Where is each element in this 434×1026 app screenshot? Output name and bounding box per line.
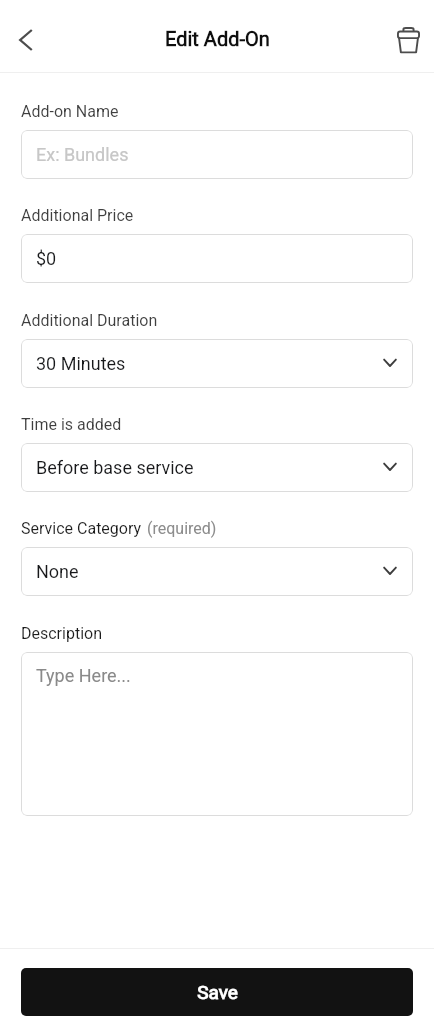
button[interactable]: Save xyxy=(21,968,413,1016)
staticText: Description xyxy=(21,624,102,643)
staticText: Additional Duration xyxy=(21,311,158,330)
staticText: None xyxy=(36,561,381,582)
staticText: $0 xyxy=(36,248,57,269)
staticText: Additional Price xyxy=(21,206,134,225)
staticText: Save xyxy=(197,981,238,1003)
staticText: Service Category xyxy=(21,519,142,538)
button[interactable]: $0 xyxy=(21,234,413,283)
staticText: Ex: Bundles xyxy=(36,144,129,165)
staticText: 30 Minutes xyxy=(36,353,381,374)
staticText: Add-on Name xyxy=(21,102,119,121)
button[interactable]: Back xyxy=(6,20,46,60)
button[interactable]: 30 Minutes xyxy=(21,339,413,388)
button[interactable]: Type Here... xyxy=(21,652,413,816)
button[interactable]: Delete xyxy=(388,18,428,58)
staticText: Before base service xyxy=(36,457,381,478)
staticText: Time is added xyxy=(21,415,122,434)
staticText: (required) xyxy=(147,519,217,538)
button[interactable]: Ex: Bundles xyxy=(21,130,413,179)
button[interactable]: None xyxy=(21,547,413,596)
staticText: Edit Add-On xyxy=(165,27,270,50)
staticText: Type Here... xyxy=(36,665,131,686)
button[interactable]: Before base service xyxy=(21,443,413,492)
